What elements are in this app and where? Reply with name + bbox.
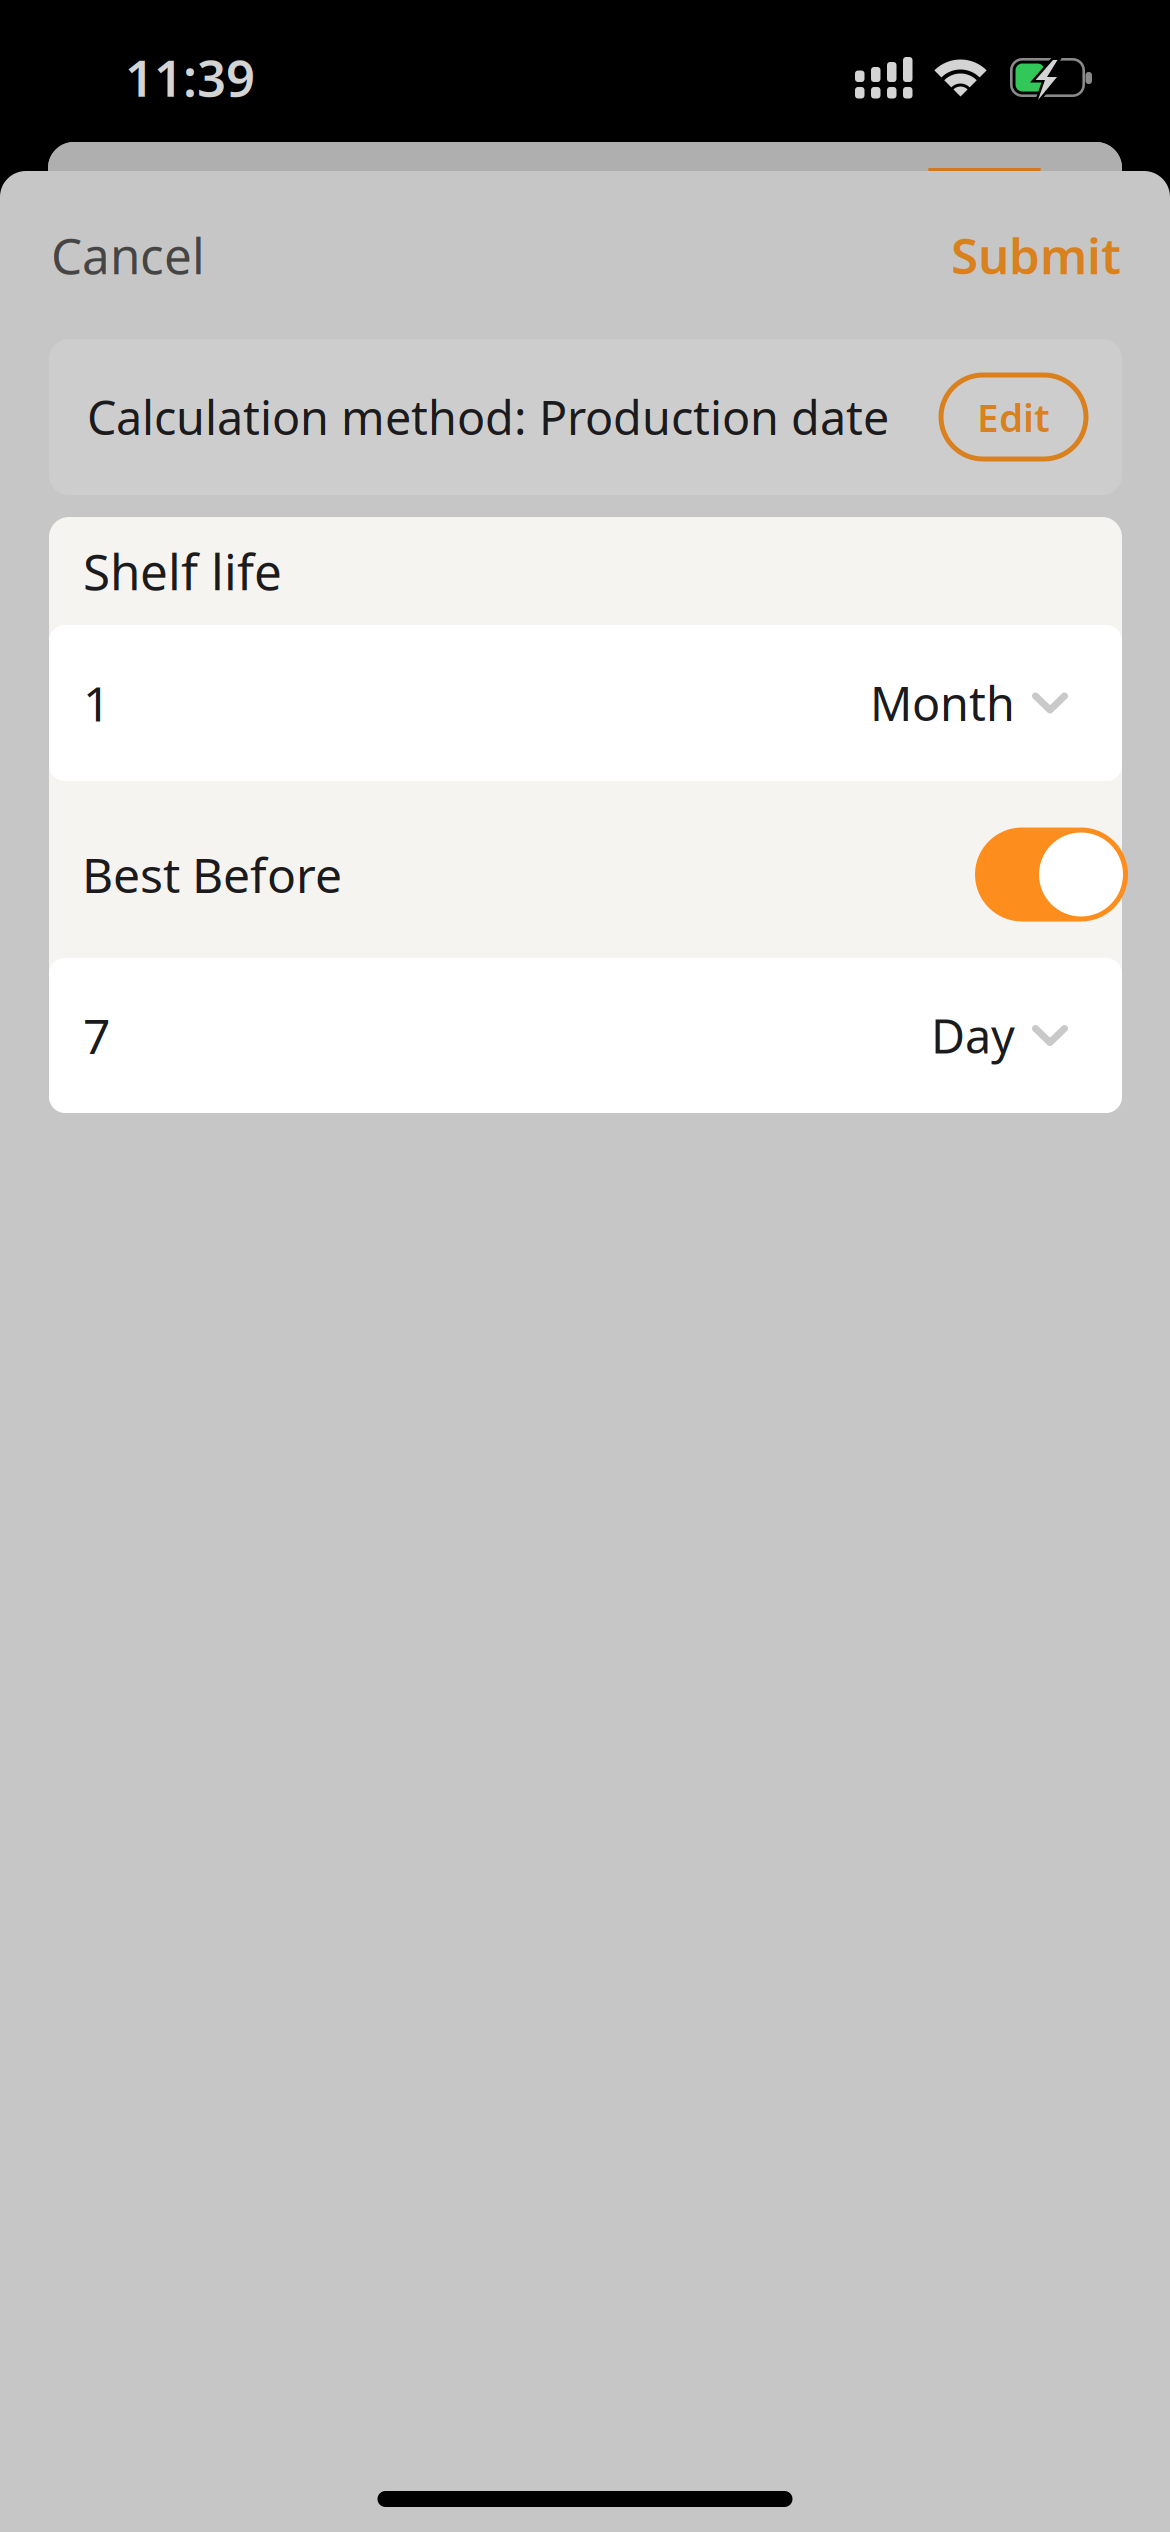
button[interactable]: Edit: [941, 375, 1086, 459]
staticText: Submit: [951, 222, 1121, 288]
staticText: Best Before: [82, 843, 342, 906]
button[interactable]: Cancel: [51, 222, 205, 288]
staticText: Calculation method: Production date: [87, 386, 889, 448]
staticText: Cancel: [51, 222, 205, 288]
button[interactable]: 1: [49, 625, 1122, 781]
button[interactable]: 7: [49, 958, 1122, 1113]
staticText: 7: [83, 1004, 110, 1067]
staticText: 11:39: [125, 43, 255, 111]
staticText: Month: [870, 672, 1015, 734]
button[interactable]: Submit: [951, 222, 1121, 288]
staticText: Shelf life: [83, 538, 282, 604]
button[interactable]: Best Before: [975, 827, 1122, 921]
staticText: Day: [931, 1004, 1015, 1066]
staticText: 1: [83, 671, 110, 735]
staticText: Edit: [977, 391, 1050, 443]
